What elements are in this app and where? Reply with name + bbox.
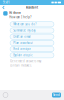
button[interactable]: Draft an email [10, 34, 54, 39]
staticText: Summarize my day [13, 29, 35, 32]
staticText: What can you do? [13, 22, 36, 26]
staticText: 9:41 [3, 1, 10, 4]
staticText: Plan a workout [13, 41, 33, 45]
button[interactable]: Back [1, 5, 6, 10]
staticText: Send [53, 93, 60, 97]
staticText: Generated answers may [10, 59, 41, 63]
button[interactable]: Explain a topic [10, 53, 54, 58]
button[interactable]: Send [52, 92, 61, 97]
staticText: Assistant [26, 6, 38, 9]
button[interactable]: Add attachment [3, 92, 8, 97]
button[interactable]: Summarize my day [10, 28, 54, 33]
button[interactable]: Plan a workout [10, 40, 54, 45]
button[interactable]: Find a recipe [10, 46, 54, 52]
staticText: Hi there [9, 11, 21, 15]
button[interactable]: What can you do? [10, 22, 54, 27]
staticText: Find a recipe [13, 47, 31, 51]
staticText: Explain a topic [13, 53, 32, 57]
staticText: How can I help? [9, 15, 31, 19]
staticText: contain mistakes. [10, 64, 32, 67]
staticText: Draft an email [13, 35, 31, 38]
